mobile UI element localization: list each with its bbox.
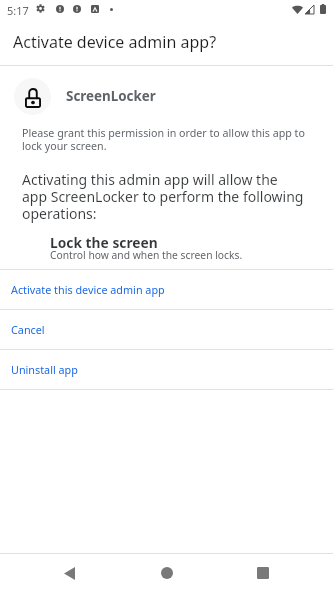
- staticText: Please grant this permission in order to…: [22, 126, 305, 153]
- button[interactable]: Cancel: [0, 310, 333, 349]
- staticText: ScreenLocker: [66, 87, 156, 105]
- button[interactable]: Back: [47, 554, 92, 592]
- staticText: Activating this admin app will allow the…: [22, 170, 304, 223]
- button[interactable]: Activate this device admin app: [0, 270, 333, 309]
- staticText: Activate device admin app?: [13, 31, 217, 53]
- staticText: Uninstall app: [11, 362, 78, 377]
- button[interactable]: Home: [144, 554, 189, 592]
- staticText: 5:17: [7, 3, 29, 18]
- staticText: Control how and when the screen locks.: [50, 248, 243, 262]
- staticText: Cancel: [11, 322, 45, 337]
- staticText: Activate this device admin app: [11, 282, 165, 297]
- button[interactable]: Recent apps: [240, 554, 285, 592]
- button[interactable]: Uninstall app: [0, 350, 333, 389]
- staticText: Lock the screen: [50, 233, 158, 252]
